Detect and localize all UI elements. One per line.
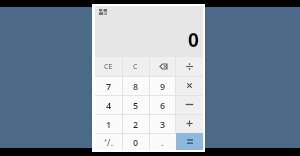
other: Add — [185, 119, 194, 128]
staticText: 6 — [160, 99, 166, 111]
button[interactable]: 4 — [95, 95, 122, 114]
button[interactable]: 2 — [122, 114, 149, 133]
button[interactable]: 7 — [95, 76, 122, 95]
button[interactable]: Menu — [97, 6, 109, 18]
staticText: 1 — [106, 118, 112, 130]
other: Equals — [185, 137, 194, 146]
staticText: 3 — [160, 118, 166, 130]
button[interactable]: Multiply — [176, 76, 203, 95]
staticText: ⁺/₋ — [104, 136, 114, 148]
button[interactable]: Divide — [176, 57, 203, 76]
staticText: CE — [104, 62, 113, 72]
other: Subtract — [185, 100, 194, 109]
other: Divide — [185, 62, 194, 71]
button[interactable]: 9 — [149, 76, 176, 95]
button[interactable]: 0 — [122, 133, 149, 150]
button[interactable]: . — [149, 133, 176, 150]
button[interactable]: 3 — [149, 114, 176, 133]
button[interactable]: 6 — [149, 95, 176, 114]
button[interactable]: 8 — [122, 76, 149, 95]
button[interactable]: Equals — [176, 133, 203, 150]
other: Multiply — [185, 81, 194, 90]
button[interactable]: C — [122, 57, 149, 76]
button[interactable]: 5 — [122, 95, 149, 114]
staticText: 2 — [133, 118, 139, 130]
button[interactable]: 1 — [95, 114, 122, 133]
staticText: 4 — [106, 99, 112, 111]
staticText: 9 — [160, 80, 166, 92]
button[interactable]: Add — [176, 114, 203, 133]
other: Backspace — [159, 63, 168, 70]
staticText: 0 — [133, 136, 139, 148]
staticText: 8 — [133, 80, 139, 92]
button[interactable]: Backspace — [149, 57, 176, 76]
button[interactable]: CE — [95, 57, 122, 76]
staticText: C — [133, 62, 138, 72]
button[interactable]: Subtract — [176, 95, 203, 114]
staticText: . — [161, 136, 164, 148]
button[interactable]: ⁺/₋ — [95, 133, 122, 150]
staticText: 5 — [133, 99, 139, 111]
staticText: 0 — [188, 27, 199, 53]
staticText: 7 — [106, 80, 112, 92]
